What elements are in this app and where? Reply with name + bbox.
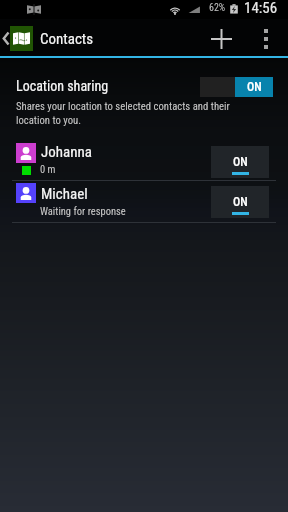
staticText: ON (233, 195, 248, 209)
staticText: Waiting for response (40, 205, 126, 217)
staticText: ON (233, 155, 248, 169)
button[interactable]: Location sharing toggle (200, 77, 273, 97)
staticText: ON (247, 80, 262, 94)
button[interactable]: Michael (0, 181, 288, 223)
button[interactable]: Toggle sharing with Johanna (211, 146, 269, 178)
button[interactable]: More options (251, 19, 280, 58)
staticText: Contacts (40, 30, 94, 48)
staticText: Johanna (41, 143, 92, 161)
staticText: 0 m (40, 163, 56, 175)
button[interactable]: Navigate up (0, 19, 33, 58)
button[interactable]: Add contact (199, 19, 243, 58)
button[interactable]: Toggle sharing with Michael (211, 186, 269, 218)
staticText: 14:56 (244, 0, 278, 17)
staticText: Shares your location to selected contact… (16, 100, 284, 126)
staticText: Location sharing (16, 78, 109, 94)
staticText: Michael (41, 185, 88, 203)
button[interactable]: Johanna (0, 141, 288, 183)
staticText: 62% (209, 2, 226, 14)
